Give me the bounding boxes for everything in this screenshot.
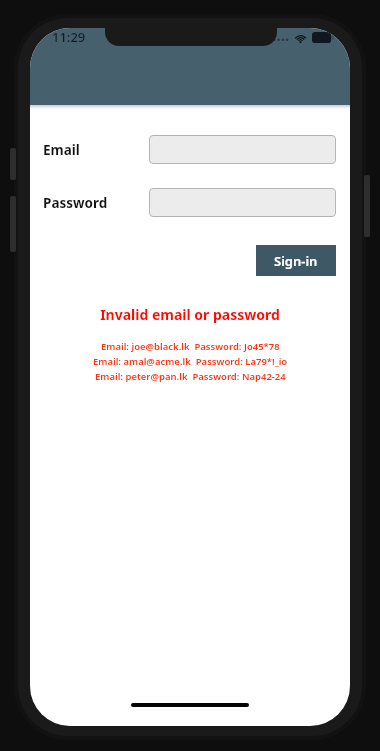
button[interactable] (149, 188, 336, 217)
button[interactable]: Sign-in (256, 245, 336, 276)
staticText: 11:29 (52, 28, 86, 46)
button[interactable] (149, 135, 336, 164)
staticText: Password (43, 194, 108, 212)
staticText: Email: peter@pan.lk Password: Nap42-24 (95, 370, 286, 383)
other: Battery (312, 32, 334, 43)
staticText: Email: amal@acme.lk Password: La79*!_io (93, 355, 288, 368)
other: Wi-Fi (294, 33, 307, 43)
staticText: Email: joe@black.lk Password: Jo45*78 (101, 340, 280, 353)
staticText: Invalid email or password (30, 305, 350, 324)
staticText: Email (43, 141, 80, 159)
staticText: Sign-in (274, 252, 318, 270)
